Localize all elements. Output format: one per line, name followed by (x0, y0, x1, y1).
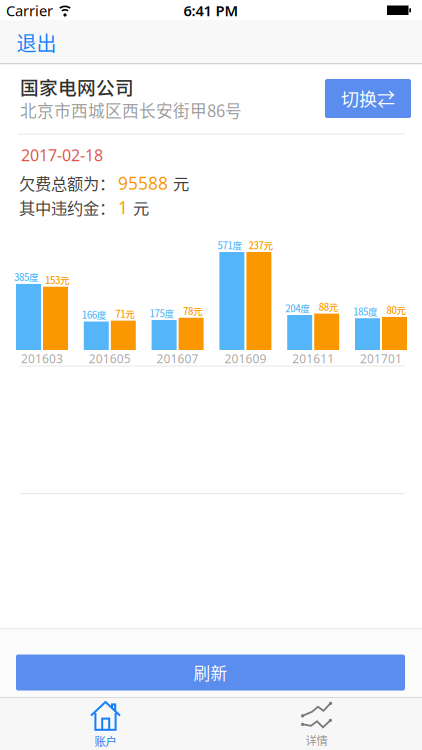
staticText: 退出 (16, 28, 56, 57)
staticText: 571度 (217, 238, 242, 252)
staticText: 185度 (353, 304, 378, 318)
staticText: 78元 (183, 304, 203, 318)
staticText: 204度 (285, 301, 310, 315)
staticText: 账户 (94, 733, 116, 749)
staticText: 元 (133, 196, 149, 219)
staticText: 6:41 PM (183, 1, 238, 20)
staticText: 1 (118, 196, 128, 219)
staticText: 201603 (21, 350, 63, 366)
staticText: 其中违约金： (19, 196, 115, 219)
staticText: 刷新 (193, 660, 227, 684)
staticText: 166度 (82, 308, 107, 321)
button[interactable]: 刷新 (16, 654, 405, 690)
staticText: 201611 (292, 350, 334, 366)
staticText: 切换⇄ (341, 85, 395, 112)
staticText: 2017-02-18 (21, 144, 103, 166)
staticText: 71元 (115, 307, 135, 321)
staticText: 153元 (45, 273, 70, 287)
staticText: 385度 (14, 270, 39, 284)
staticText: 175度 (150, 306, 175, 320)
staticText: 80元 (386, 303, 406, 317)
staticText: 北京市西城区西长安街甲86号 (20, 98, 242, 122)
button[interactable]: 详情 (211, 698, 422, 750)
button[interactable]: 账户 (0, 698, 211, 750)
button[interactable]: 切换⇄ (325, 79, 411, 118)
staticText: 欠费总额为： (19, 171, 115, 195)
staticText: 201701 (360, 350, 402, 366)
staticText: 88元 (319, 300, 339, 314)
staticText: 详情 (305, 732, 327, 748)
staticText: 国家电网公司 (20, 73, 134, 100)
staticText: 201605 (89, 350, 131, 366)
staticText: 95588 (118, 171, 168, 194)
staticText: Carrier (6, 1, 53, 20)
staticText: 237元 (248, 238, 273, 252)
staticText: 201607 (157, 350, 199, 366)
staticText: 元 (173, 171, 189, 195)
staticText: 201609 (224, 350, 266, 366)
button[interactable]: 退出 (0, 21, 68, 64)
